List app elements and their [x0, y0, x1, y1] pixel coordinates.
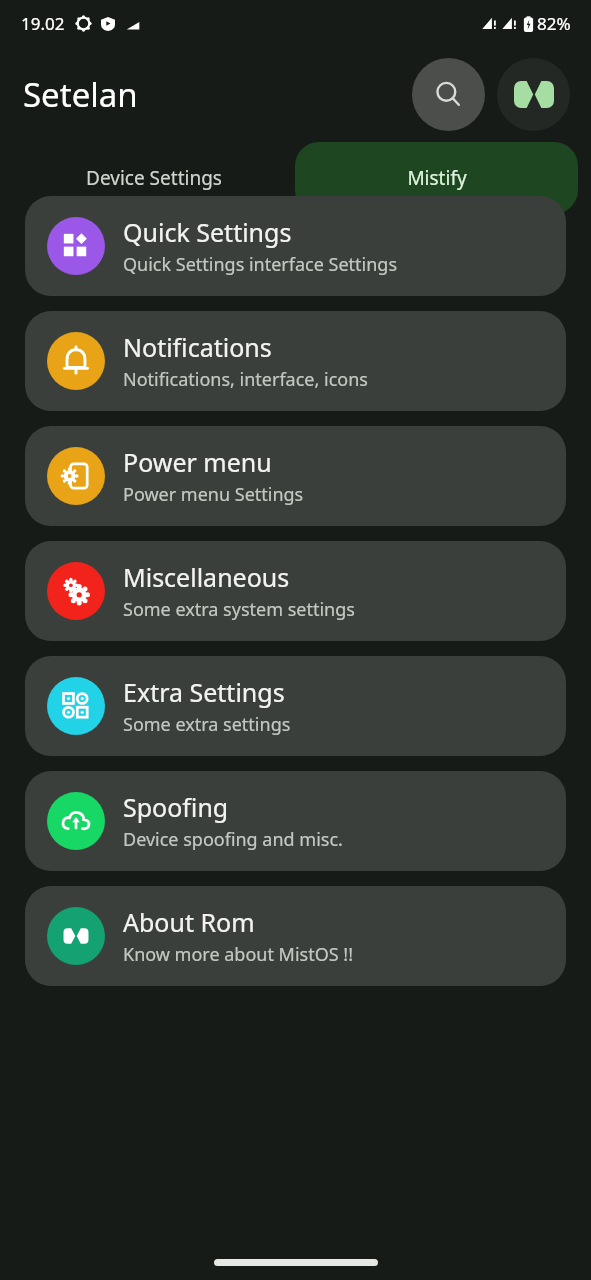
- button[interactable]: Mistify: [295, 142, 578, 214]
- staticText: Extra Settings: [123, 675, 285, 709]
- staticText: Some extra settings: [123, 712, 291, 737]
- staticText: Power menu Settings: [123, 482, 304, 507]
- button[interactable]: Power menu: [25, 426, 566, 526]
- staticText: About Rom: [123, 905, 255, 939]
- button[interactable]: Extra Settings: [25, 656, 566, 756]
- button[interactable]: Account: [497, 58, 570, 131]
- staticText: Some extra system settings: [123, 597, 355, 622]
- staticText: Device spoofing and misc.: [123, 827, 343, 852]
- button[interactable]: About Rom: [25, 886, 566, 986]
- staticText: Quick Settings: [123, 215, 292, 249]
- staticText: 82%: [537, 12, 571, 35]
- staticText: Know more about MistOS !!: [123, 942, 354, 967]
- button[interactable]: Miscellaneous: [25, 541, 566, 641]
- button[interactable]: Notifications: [25, 311, 566, 411]
- staticText: Setelan: [23, 72, 138, 117]
- staticText: Notifications, interface, icons: [123, 367, 368, 392]
- staticText: Power menu: [123, 445, 272, 479]
- staticText: Notifications: [123, 330, 272, 364]
- staticText: Mistify: [407, 165, 467, 191]
- button[interactable]: Quick Settings: [25, 196, 566, 296]
- button[interactable]: Device Settings: [13, 142, 295, 214]
- button[interactable]: Search: [412, 58, 485, 131]
- staticText: Spoofing: [123, 790, 229, 824]
- staticText: 19.02: [21, 12, 65, 35]
- staticText: Quick Settings interface Settings: [123, 252, 398, 277]
- staticText: Device Settings: [86, 165, 222, 191]
- staticText: Miscellaneous: [123, 560, 290, 594]
- button[interactable]: Spoofing: [25, 771, 566, 871]
